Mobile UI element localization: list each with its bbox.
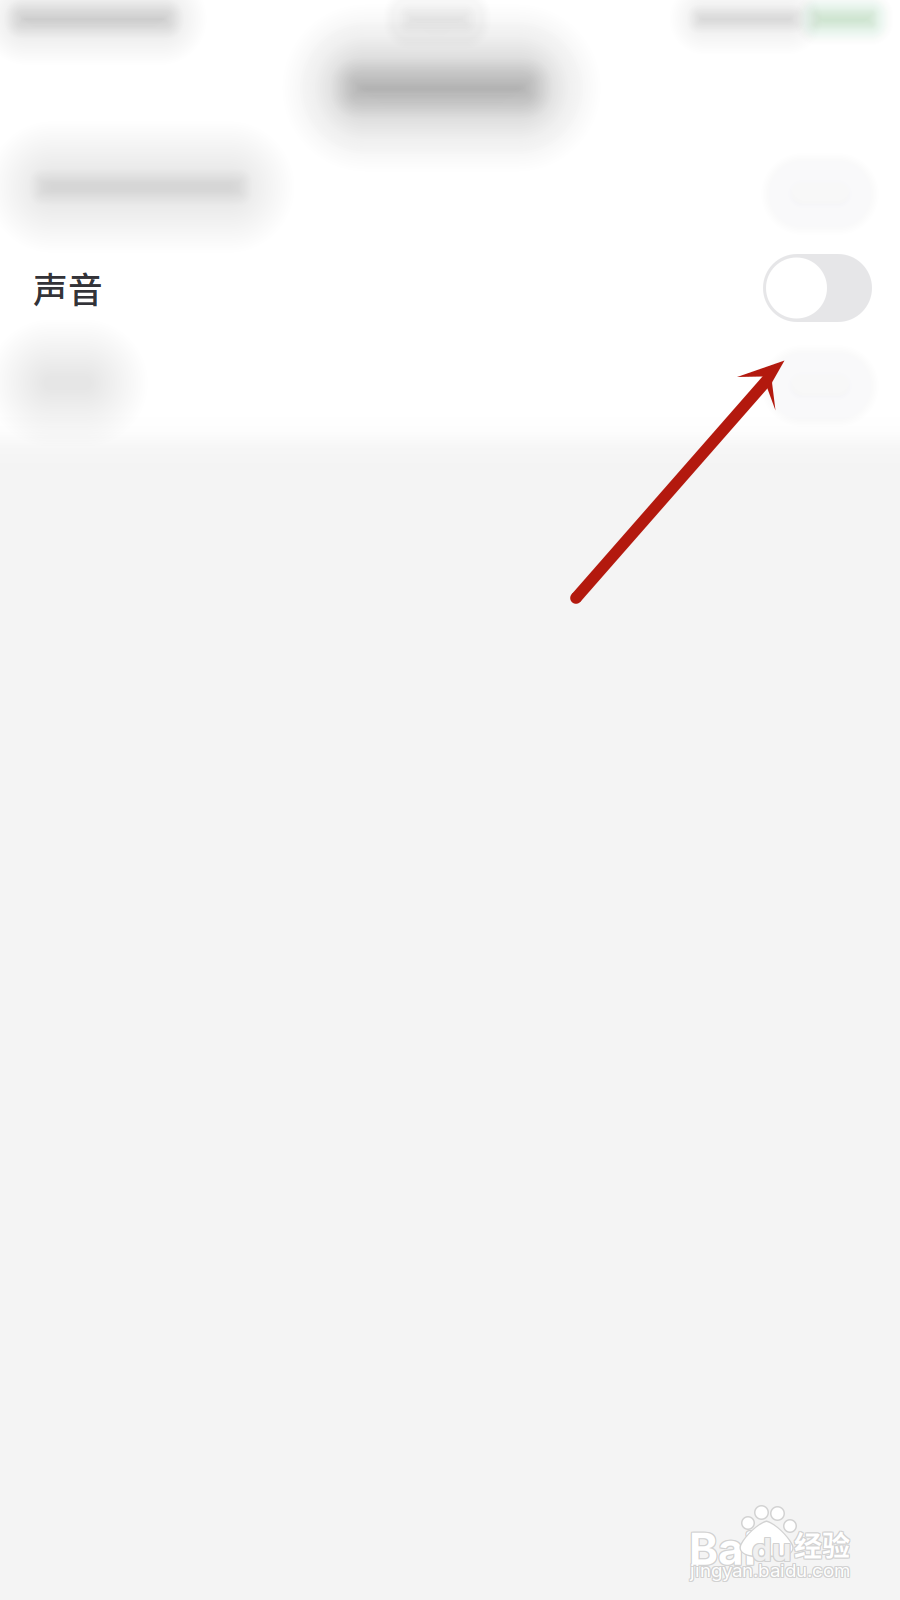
staticText: 经验 [793,1523,849,1563]
staticText: jingyan.baidu.com [689,1559,849,1582]
button[interactable]: 声音 [0,231,900,345]
staticText: du [753,1530,792,1569]
staticText: du [751,1530,790,1569]
staticText: Bai [689,1523,756,1576]
staticText: 经验 [793,1524,849,1564]
staticText: Bai [688,1522,755,1575]
staticText: 经验 [794,1523,850,1563]
staticText: du [752,1530,791,1569]
staticText: du [752,1531,791,1570]
staticText: du [751,1531,790,1570]
staticText: Bai [690,1522,757,1575]
staticText: du [752,1529,791,1568]
staticText: 经验 [793,1525,849,1565]
staticText: jingyan.baidu.com [690,1559,850,1582]
staticText: jingyan.baidu.com [690,1558,850,1581]
staticText: Bai [690,1521,757,1574]
staticText: Bai [690,1523,757,1576]
staticText: du [753,1529,792,1568]
staticText: jingyan.baidu.com [690,1560,850,1583]
staticText: jingyan.baidu.com [691,1558,851,1581]
staticText: 经验 [794,1524,850,1564]
staticText: jingyan.baidu.com [691,1560,851,1583]
staticText: 经验 [794,1525,850,1565]
staticText: jingyan.baidu.com [689,1558,849,1581]
staticText: Bai [689,1521,756,1574]
staticText: Bai [688,1523,755,1576]
staticText: Bai [688,1521,755,1574]
staticText: jingyan.baidu.com [689,1560,849,1583]
staticText: 经验 [795,1523,851,1563]
staticText: du [751,1529,790,1568]
staticText: Bai [689,1522,756,1575]
staticText: 经验 [795,1524,851,1564]
staticText: 经验 [795,1525,851,1565]
staticText: du [753,1531,792,1570]
staticText: 声音 [33,263,103,313]
staticText: jingyan.baidu.com [691,1559,851,1582]
